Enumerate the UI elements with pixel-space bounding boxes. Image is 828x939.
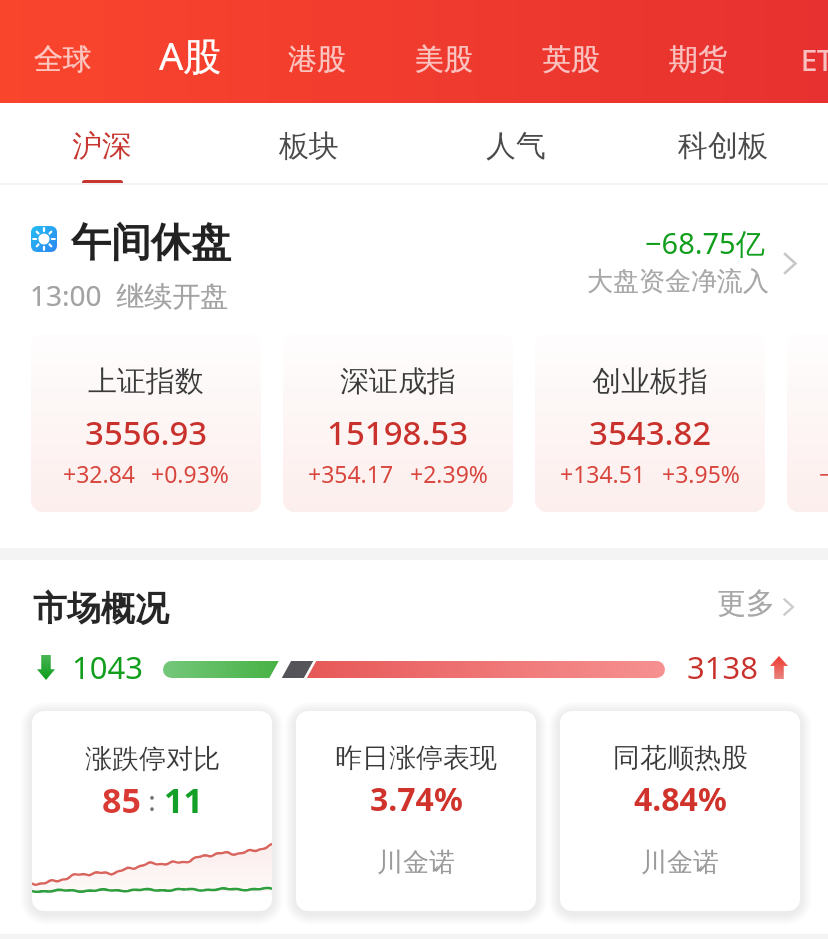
staticText: −68.75亿 xyxy=(645,223,765,263)
button[interactable]: 人气 xyxy=(416,103,616,185)
button[interactable]: 板块 xyxy=(209,103,409,185)
staticText: 1043 xyxy=(72,646,143,688)
staticText: 沪深 xyxy=(72,127,132,165)
staticText: 4.84% xyxy=(634,777,727,821)
button[interactable]: 中证500 xyxy=(787,334,828,512)
staticText: 85 xyxy=(102,777,141,823)
button[interactable]: 创业板指 xyxy=(535,334,765,512)
staticText: 15198.53 xyxy=(327,410,469,455)
staticText: 昨日涨停表现 xyxy=(335,741,497,775)
other: Advancing stocks xyxy=(770,656,788,679)
staticText: 英股 xyxy=(542,41,600,78)
button[interactable]: 期货 xyxy=(635,24,761,94)
staticText: 港股 xyxy=(288,41,346,78)
other: Details xyxy=(776,250,803,277)
staticText: −13.02 xyxy=(819,458,828,489)
button[interactable]: ETF xyxy=(762,24,828,94)
staticText: 美股 xyxy=(415,41,473,78)
staticText: 板块 xyxy=(279,127,339,165)
staticText: +32.84 xyxy=(63,458,135,489)
staticText: +0.93% xyxy=(151,458,229,489)
button[interactable]: 深证成指 xyxy=(283,334,513,512)
staticText: 大盘资金净流入 xyxy=(587,265,769,298)
staticText: +354.17 xyxy=(308,458,394,489)
button[interactable]: 午间休盘 xyxy=(0,185,828,325)
button[interactable]: 英股 xyxy=(508,24,634,94)
staticText: ETF xyxy=(801,40,828,79)
button[interactable]: 港股 xyxy=(254,24,380,94)
staticText: 同花顺热股 xyxy=(613,741,748,775)
button[interactable]: 全球 xyxy=(0,24,126,94)
button[interactable]: 更多 xyxy=(708,580,808,628)
button[interactable]: 昨日涨停表现 xyxy=(296,711,536,911)
staticText: 川金诺 xyxy=(377,846,455,879)
staticText: 全球 xyxy=(34,41,92,78)
staticText: 11 xyxy=(164,777,203,823)
button[interactable]: 沪深 xyxy=(2,103,202,185)
button[interactable]: 美股 xyxy=(381,24,507,94)
staticText: A股 xyxy=(159,29,222,81)
staticText: 人气 xyxy=(486,127,546,165)
other: Declining stocks xyxy=(37,655,55,680)
staticText: 午间休盘 xyxy=(71,217,231,267)
staticText: 期货 xyxy=(669,41,727,78)
staticText: 川金诺 xyxy=(641,846,719,879)
staticText: 3.74% xyxy=(370,777,463,821)
staticText: 创业板指 xyxy=(592,363,708,400)
button[interactable]: A股 xyxy=(127,24,253,94)
button[interactable]: 上证指数 xyxy=(31,334,261,512)
staticText: 市场概况 xyxy=(33,587,169,630)
staticText: +134.51 xyxy=(560,458,646,489)
staticText: 上证指数 xyxy=(88,363,204,400)
staticText: 3138 xyxy=(687,646,758,688)
staticText: 深证成指 xyxy=(340,363,456,400)
staticText: 科创板 xyxy=(678,127,768,165)
button[interactable]: 科创板 xyxy=(623,103,823,185)
staticText: 涨跌停对比 xyxy=(85,742,220,776)
staticText: 更多 xyxy=(717,585,775,622)
button[interactable]: 同花顺热股 xyxy=(560,711,800,911)
staticText: : xyxy=(141,781,164,819)
staticText: 13:00 继续开盘 xyxy=(30,276,229,314)
staticText: +2.39% xyxy=(410,458,488,489)
button[interactable]: 涨跌停对比 xyxy=(32,711,272,911)
staticText: 3556.93 xyxy=(85,410,208,455)
staticText: 3543.82 xyxy=(589,410,712,455)
staticText: +3.95% xyxy=(662,458,740,489)
